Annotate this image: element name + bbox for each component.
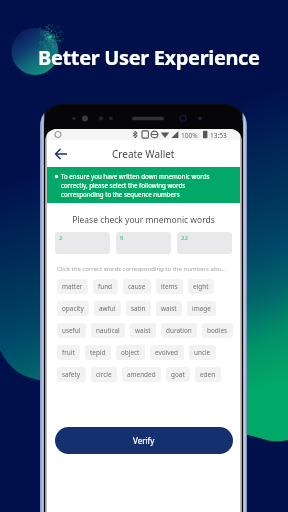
staticText: eight [193, 282, 209, 291]
button[interactable]: goat [166, 367, 190, 382]
staticText: 9 [120, 234, 124, 242]
button[interactable]: evolved [150, 345, 184, 360]
button[interactable]: awful [94, 301, 121, 316]
staticText: circle [96, 370, 112, 379]
button[interactable]: useful [57, 323, 86, 338]
staticText: uncle [194, 348, 211, 357]
staticText: fund [98, 282, 113, 291]
button[interactable]: 2 [55, 232, 110, 254]
staticText: goat [171, 370, 185, 379]
staticText: cause [128, 282, 146, 291]
staticText: useful [62, 326, 81, 335]
staticText: waist [161, 304, 177, 313]
staticText: Click the correct words corresponding to… [57, 265, 227, 273]
staticText: bodies [207, 326, 228, 335]
button[interactable]: amended [122, 367, 161, 382]
button[interactable]: uncle [189, 345, 216, 360]
staticText: amended [127, 370, 156, 379]
button[interactable]: nautical [91, 323, 125, 338]
button[interactable]: items [156, 279, 183, 294]
staticText: nautical [96, 326, 120, 335]
staticText: To ensure you have written down mnemonic… [61, 172, 226, 199]
staticText: opacity [62, 304, 84, 313]
staticText: object [121, 348, 140, 357]
button[interactable]: Back [51, 144, 71, 164]
staticText: safety [62, 370, 81, 379]
button[interactable]: eden [195, 367, 221, 382]
button[interactable]: eight [188, 279, 214, 294]
button[interactable]: matter [57, 279, 88, 294]
staticText: eden [200, 370, 216, 379]
staticText: 13:53 [210, 131, 227, 140]
staticText: matter [62, 282, 83, 291]
button[interactable]: waist [156, 301, 182, 316]
staticText: 2 [59, 234, 63, 242]
staticText: fruit [62, 348, 75, 357]
staticText: duration [166, 326, 192, 335]
staticText: satin [131, 304, 146, 313]
button[interactable]: opacity [57, 301, 89, 316]
button[interactable]: image [187, 301, 216, 316]
staticText: 22 [181, 234, 188, 242]
staticText: waist [135, 326, 151, 335]
staticText: image [192, 304, 211, 313]
button[interactable]: tepid [85, 345, 111, 360]
button[interactable]: fund [93, 279, 118, 294]
button[interactable]: object [116, 345, 145, 360]
button[interactable]: 22 [177, 232, 232, 254]
button[interactable]: waist [130, 323, 156, 338]
button[interactable]: circle [91, 367, 117, 382]
staticText: evolved [155, 348, 179, 357]
staticText: Better User Experience [38, 44, 260, 71]
button[interactable]: cause [123, 279, 151, 294]
staticText: Please check your mnemonic words [47, 214, 240, 226]
staticText: awful [99, 304, 116, 313]
button[interactable]: satin [126, 301, 151, 316]
button[interactable]: Verify [55, 427, 233, 454]
staticText: Create Wallet [112, 147, 175, 161]
button[interactable]: safety [57, 367, 86, 382]
button[interactable]: fruit [57, 345, 80, 360]
staticText: tepid [90, 348, 106, 357]
button[interactable]: duration [161, 323, 197, 338]
button[interactable]: bodies [202, 323, 233, 338]
button[interactable]: 9 [116, 232, 171, 254]
staticText: 100% [181, 131, 198, 140]
staticText: items [161, 282, 178, 291]
staticText: Verify [133, 435, 155, 446]
